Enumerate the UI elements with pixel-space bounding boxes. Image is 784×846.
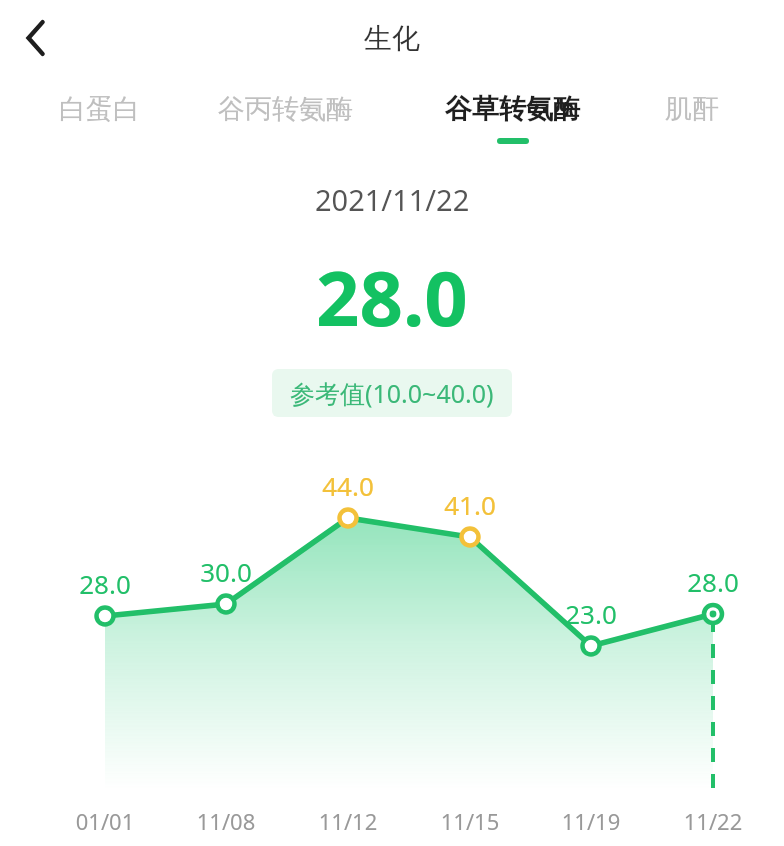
staticText: 白蛋白 bbox=[59, 92, 140, 126]
staticText: 23.0 bbox=[553, 596, 629, 631]
staticText: 2021/11/22 bbox=[315, 180, 470, 219]
staticText: 11/08 bbox=[186, 806, 266, 836]
button[interactable]: 参考值(10.0~40.0) bbox=[272, 369, 512, 417]
staticText: 01/01 bbox=[65, 806, 145, 836]
staticText: 28.0 bbox=[316, 245, 468, 349]
staticText: 11/22 bbox=[673, 806, 753, 836]
staticText: 11/12 bbox=[308, 806, 388, 836]
button[interactable]: 谷草转氨酶 bbox=[399, 76, 626, 180]
button[interactable]: 谷丙转氨酶 bbox=[172, 76, 399, 180]
staticText: 41.0 bbox=[432, 487, 508, 522]
button[interactable]: 白蛋白 bbox=[26, 76, 172, 180]
button[interactable]: 肌酐 bbox=[626, 76, 758, 180]
staticText: 生化 bbox=[364, 21, 420, 56]
staticText: 11/19 bbox=[551, 806, 631, 836]
staticText: 44.0 bbox=[310, 468, 386, 503]
staticText: 11/15 bbox=[430, 806, 510, 836]
staticText: 30.0 bbox=[188, 554, 264, 589]
staticText: 谷丙转氨酶 bbox=[218, 92, 353, 126]
staticText: 28.0 bbox=[67, 566, 143, 601]
staticText: 肌酐 bbox=[665, 92, 719, 126]
staticText: 参考值(10.0~40.0) bbox=[290, 376, 494, 410]
staticText: 28.0 bbox=[675, 564, 751, 599]
button[interactable]: Back bbox=[0, 0, 72, 76]
staticText: 谷草转氨酶 bbox=[445, 92, 580, 126]
